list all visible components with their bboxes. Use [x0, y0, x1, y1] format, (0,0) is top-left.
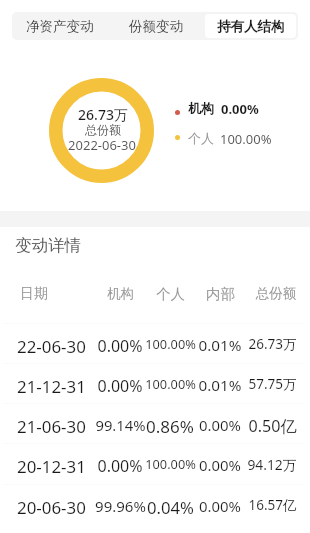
staticText: 57.75万: [248, 375, 297, 393]
staticText: 内部: [206, 285, 235, 303]
staticText: 0.50亿: [248, 415, 297, 437]
staticText: 100.00%: [145, 375, 196, 392]
staticText: 个人: [188, 130, 214, 146]
staticText: 日期: [20, 285, 48, 303]
staticText: 份额变动: [129, 18, 183, 35]
staticText: 0.00%: [97, 335, 143, 357]
staticText: 个人: [156, 285, 185, 303]
button[interactable]: 个人: [188, 130, 272, 148]
button[interactable]: [0, 443, 310, 483]
staticText: 0.00%: [221, 100, 259, 118]
staticText: 0.01%: [198, 375, 242, 396]
staticText: 总份额: [85, 122, 121, 137]
staticText: 0.04%: [147, 496, 194, 519]
staticText: 100.00%: [220, 130, 272, 148]
staticText: 0.86%: [146, 415, 194, 438]
staticText: 21-06-30: [17, 415, 86, 438]
staticText: 0.01%: [198, 335, 242, 356]
staticText: 0.00%: [199, 415, 241, 435]
button[interactable]: [0, 323, 310, 363]
staticText: 0.00%: [199, 455, 241, 475]
staticText: 总份额: [255, 285, 297, 302]
staticText: 持有人结构: [217, 18, 285, 35]
staticText: 99.96%: [95, 496, 146, 516]
staticText: 22-06-30: [17, 335, 86, 358]
staticText: 0.00%: [97, 375, 143, 397]
button[interactable]: [0, 484, 310, 524]
staticText: 0.00%: [97, 455, 143, 477]
staticText: 2022-06-30: [68, 136, 136, 154]
staticText: 26.73万: [78, 105, 128, 124]
button[interactable]: [0, 363, 310, 403]
staticText: 0.00%: [199, 496, 241, 516]
staticText: 26.73万: [248, 335, 297, 353]
staticText: 16.57亿: [248, 496, 297, 514]
button[interactable]: 份额变动: [110, 14, 201, 38]
staticText: 99.14%: [95, 415, 146, 435]
staticText: 94.12万: [247, 455, 297, 474]
staticText: 100.00%: [145, 335, 196, 352]
staticText: 机构: [107, 285, 134, 302]
button[interactable]: 净资产变动: [14, 14, 106, 38]
staticText: 变动详情: [15, 235, 81, 256]
button[interactable]: 机构: [188, 100, 259, 118]
staticText: 20-06-30: [17, 496, 86, 519]
staticText: 21-12-31: [17, 375, 86, 398]
staticText: 机构: [188, 100, 214, 116]
staticText: 20-12-31: [17, 455, 86, 478]
staticText: 净资产变动: [26, 18, 94, 35]
button[interactable]: 持有人结构: [205, 14, 296, 38]
button[interactable]: [0, 403, 310, 443]
staticText: 100.00%: [145, 455, 196, 472]
